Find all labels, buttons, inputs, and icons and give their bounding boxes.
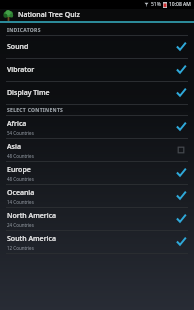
button[interactable]: Sound	[0, 36, 194, 59]
other: Checked	[175, 167, 187, 179]
other: Checked	[175, 213, 187, 225]
staticText: 51%	[151, 1, 161, 8]
staticText: Sound	[7, 42, 29, 52]
staticText: National Tree Quiz	[18, 10, 80, 20]
button[interactable]: Vibrator	[0, 59, 194, 82]
other: Unchecked	[175, 144, 187, 156]
staticText: 48 Countries	[7, 153, 34, 159]
button[interactable]: Europe	[0, 162, 194, 185]
other: Checked	[175, 87, 187, 99]
staticText: North America	[7, 211, 57, 221]
other: Checked	[175, 41, 187, 53]
staticText: 24 Countries	[7, 222, 34, 228]
button[interactable]: Africa	[0, 116, 194, 139]
button[interactable]: North America	[0, 208, 194, 231]
other: App icon	[3, 10, 14, 21]
staticText: Asia	[7, 142, 21, 152]
other: Checked	[175, 236, 187, 248]
staticText: South America	[7, 234, 56, 244]
button[interactable]: Asia	[0, 139, 194, 162]
staticText: 10:08 AM	[169, 1, 191, 8]
other: Checked	[175, 64, 187, 76]
staticText: Africa	[7, 119, 27, 129]
staticText: 14 Countries	[7, 199, 34, 205]
other: Checked	[175, 190, 187, 202]
staticText: Display Time	[7, 88, 50, 98]
staticText: Vibrator	[7, 65, 35, 75]
staticText: Europe	[7, 165, 31, 175]
staticText: 12 Countries	[7, 245, 34, 251]
button[interactable]: Display Time	[0, 82, 194, 105]
staticText: INDICATORS	[7, 27, 41, 34]
staticText: SELECT CONTINENTS	[7, 107, 64, 114]
other: Checked	[175, 121, 187, 133]
staticText: Oceania	[7, 188, 35, 198]
button[interactable]: South America	[0, 231, 194, 254]
button[interactable]: Oceania	[0, 185, 194, 208]
staticText: 54 Countries	[7, 130, 34, 136]
staticText: 48 Countries	[7, 176, 34, 182]
